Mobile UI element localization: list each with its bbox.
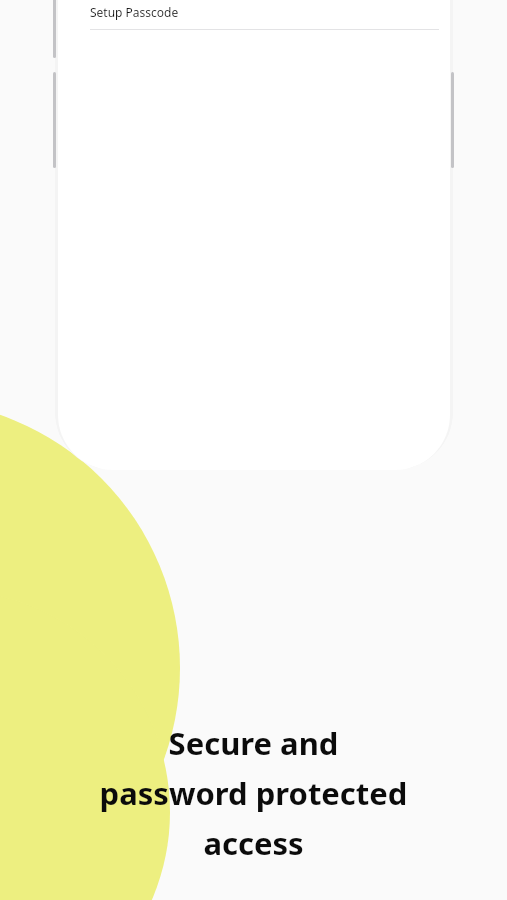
staticText: Setup Passcode <box>90 4 179 20</box>
button[interactable]: Setup Passcode <box>69 0 439 29</box>
staticText: Secure and password protected access <box>16 722 491 864</box>
